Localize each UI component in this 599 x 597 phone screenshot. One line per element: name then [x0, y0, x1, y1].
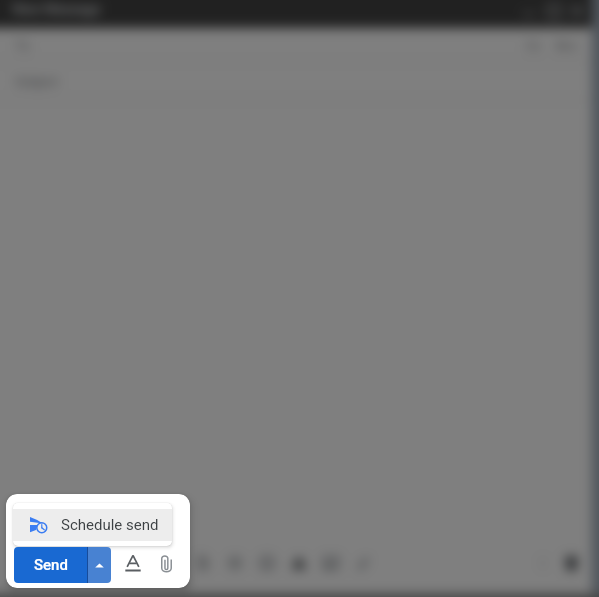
button[interactable]: More send options — [88, 547, 111, 583]
button[interactable]: Minimize — [518, 0, 540, 22]
button[interactable]: Send — [14, 547, 87, 583]
button[interactable]: Insert link — [224, 552, 246, 574]
button[interactable]: Discard draft — [560, 552, 582, 574]
staticText: New Message — [12, 1, 101, 17]
button[interactable]: Attach file — [152, 550, 180, 578]
button[interactable]: Attach files — [192, 552, 214, 574]
button[interactable]: Insert from Drive — [288, 552, 310, 574]
button[interactable]: Insert emoji — [256, 552, 278, 574]
button[interactable]: Insert photo — [320, 552, 342, 574]
button[interactable]: Close — [566, 0, 588, 22]
button[interactable]: Full screen — [543, 0, 565, 22]
button[interactable]: Schedule send — [13, 509, 172, 541]
button[interactable]: Formatting options — [119, 549, 147, 577]
staticText: Schedule send — [61, 516, 159, 534]
staticText: Send — [34, 556, 68, 574]
